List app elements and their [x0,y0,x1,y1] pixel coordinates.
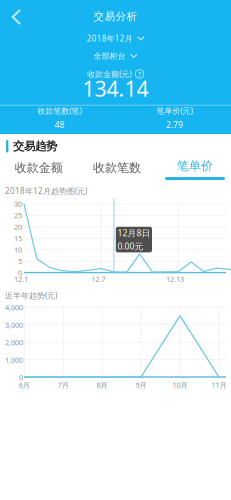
staticText: 收款笔数 [93,160,141,175]
staticText: 3,000 [5,320,23,330]
staticText: 134.14 [82,74,148,103]
staticText: 6月 [19,380,30,390]
staticText: 9月 [135,380,146,390]
staticText: 2018年12月 [87,33,133,44]
staticText: ? [138,69,141,79]
staticText: 15 [14,233,22,243]
staticText: 12.13 [166,274,184,284]
staticText: 0 [19,372,23,382]
staticText: 收款金额(元) [87,69,131,79]
staticText: 8月 [97,380,108,390]
staticText: 12月8日 [117,227,150,239]
staticText: 5 [18,256,22,266]
staticText: 0 [18,268,22,278]
staticText: 交易趋势 [13,139,57,153]
staticText: 近半年趋势(元) [5,290,57,301]
staticText: 0.00元 [117,240,143,252]
button[interactable]: 收款金额 [6,156,72,180]
staticText: 25 [14,210,22,220]
staticText: 笔单价(元) [156,105,192,116]
staticText: 全部柜台 [94,51,126,61]
staticText: 10 [14,245,22,255]
staticText: 笔单价 [177,158,213,173]
staticText: 1,000 [5,355,23,365]
staticText: 48 [55,119,65,131]
button[interactable]: Back [0,2,32,32]
staticText: 交易分析 [93,10,137,23]
staticText: 2,000 [5,337,23,347]
staticText: 7月 [58,380,69,390]
staticText: 11月 [211,380,226,390]
staticText: 2018年12月趋势图(元) [5,186,87,196]
staticText: 10月 [172,380,187,390]
staticText: 2.79 [166,119,183,131]
staticText: 30 [14,199,22,209]
button[interactable]: 2018年12月 [80,30,151,47]
button[interactable]: 收款笔数 [84,156,150,180]
staticText: 12.7 [91,274,105,284]
staticText: 20 [14,222,22,232]
staticText: 12.1 [14,274,28,284]
staticText: 收款金额 [15,160,63,175]
button[interactable]: 笔单价 [164,155,226,180]
button[interactable]: 全部柜台 [87,48,144,64]
staticText: 4,000 [5,302,23,312]
staticText: 收款笔数(笔) [38,105,82,116]
